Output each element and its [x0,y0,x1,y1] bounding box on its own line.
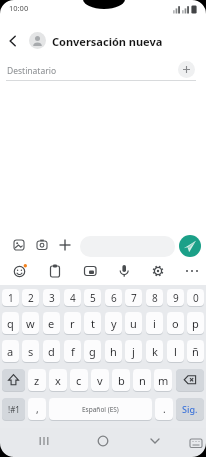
staticText: o [172,316,179,331]
staticText: j [132,344,135,359]
button[interactable]: l [167,340,184,362]
staticText: Conversación nueva [52,34,163,49]
staticText: m [158,373,169,388]
button[interactable]: t [84,312,101,334]
button[interactable]: z [28,369,46,391]
staticText: v [97,373,103,388]
button[interactable]: i [146,312,163,334]
staticText: f [71,344,75,359]
button[interactable]: . [155,398,173,420]
staticText: 10:00 [9,3,29,13]
button[interactable]: , [28,398,46,420]
button[interactable] [9,235,29,255]
button[interactable]: g [84,340,101,362]
button[interactable]: 3 [43,289,60,306]
staticText: t [91,316,95,331]
button[interactable]: Sig. [176,398,204,420]
button[interactable] [2,369,25,391]
button[interactable] [94,432,112,450]
staticText: g [89,344,96,359]
staticText: s [28,344,34,359]
staticText: e [48,316,55,331]
button[interactable]: a [2,340,19,362]
staticText: . [163,402,166,416]
button[interactable]: j [125,340,142,362]
staticText: Español (ES) [82,405,119,414]
staticText: w [26,316,35,331]
button[interactable] [179,235,201,257]
button[interactable]: f [64,340,81,362]
staticText: , [36,402,39,416]
button[interactable]: r [64,312,81,334]
button[interactable] [10,261,30,281]
staticText: h [110,344,117,359]
staticText: u [130,316,137,331]
button[interactable]: 2 [22,289,39,306]
staticText: z [34,373,40,388]
button[interactable]: k [146,340,163,362]
button[interactable]: x [49,369,67,391]
button[interactable]: e [43,312,60,334]
staticText: x [55,373,61,388]
button[interactable] [45,261,65,281]
staticText: Sig. [182,403,198,415]
staticText: 2 [28,291,34,305]
button[interactable] [176,369,204,391]
button[interactable] [32,235,52,255]
button[interactable]: m [154,369,172,391]
button[interactable]: p [187,312,204,334]
staticText: b [118,373,125,388]
button[interactable] [178,61,195,78]
button[interactable]: ñ [187,340,204,362]
button[interactable]: n [133,369,151,391]
button[interactable] [4,32,22,50]
button[interactable] [148,261,168,281]
button[interactable]: d [43,340,60,362]
button[interactable]: w [22,312,39,334]
button[interactable]: v [91,369,109,391]
button[interactable]: s [22,340,39,362]
button[interactable]: 9 [167,289,184,306]
button[interactable] [55,235,75,255]
button[interactable] [29,32,46,49]
button[interactable]: !#1 [2,398,25,420]
button[interactable]: y [105,312,122,334]
staticText: c [76,373,82,388]
button[interactable]: 6 [105,289,122,306]
staticText: y [111,316,117,331]
staticText: l [174,344,177,359]
button[interactable]: 4 [64,289,81,306]
button[interactable]: Español (ES) [49,398,152,420]
button[interactable] [182,261,202,281]
staticText: 0 [193,291,199,305]
button[interactable]: o [167,312,184,334]
button[interactable]: h [105,340,122,362]
button[interactable] [146,432,164,450]
staticText: r [70,316,75,331]
staticText: k [152,344,158,359]
button[interactable]: q [2,312,19,334]
button[interactable]: u [125,312,142,334]
staticText: 6 [111,291,117,305]
button[interactable] [35,432,53,450]
button[interactable]: b [112,369,130,391]
staticText: 5 [90,291,96,305]
staticText: d [48,344,55,359]
staticText: p [192,316,199,331]
button[interactable]: 0 [187,289,204,306]
button[interactable]: 8 [146,289,163,306]
button[interactable]: 1 [2,289,19,306]
staticText: 8 [152,291,158,305]
button[interactable]: 7 [125,289,142,306]
button[interactable] [80,261,100,281]
staticText: 9 [173,291,179,305]
button[interactable]: c [70,369,88,391]
button[interactable] [188,435,204,451]
staticText: ñ [192,344,199,359]
staticText: !#1 [8,404,20,415]
staticText: Destinatario [7,65,57,77]
button[interactable]: 5 [84,289,101,306]
staticText: 4 [70,291,76,305]
button[interactable] [114,261,134,281]
